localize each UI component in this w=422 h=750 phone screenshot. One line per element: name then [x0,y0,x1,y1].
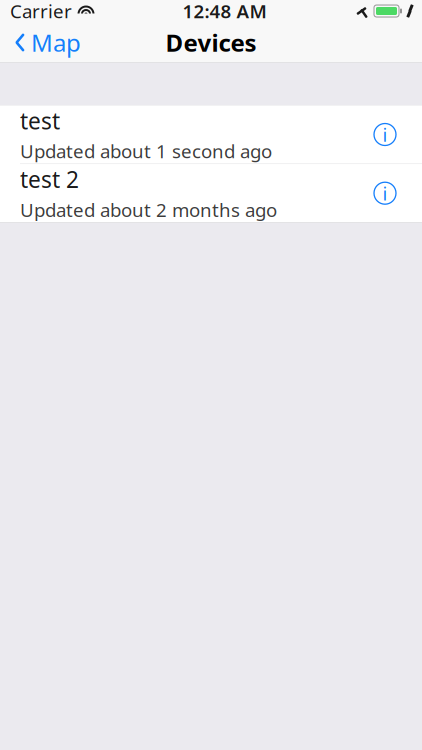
staticText: test [20,106,60,136]
button[interactable]: More info [366,174,404,212]
button[interactable]: test 2 [0,164,422,222]
staticText: test 2 [20,164,79,194]
staticText: Updated about 2 months ago [20,197,277,222]
button[interactable]: More info [366,115,404,153]
staticText: Devices [165,27,256,58]
staticText: i [382,122,387,147]
staticText: i [382,181,387,206]
staticText: Updated about 1 second ago [20,139,272,163]
button[interactable]: Map [0,21,91,64]
staticText: Map [31,27,81,58]
staticText: Carrier [10,0,72,23]
staticText: 12:48 AM [182,0,266,23]
button[interactable]: test [0,105,422,163]
